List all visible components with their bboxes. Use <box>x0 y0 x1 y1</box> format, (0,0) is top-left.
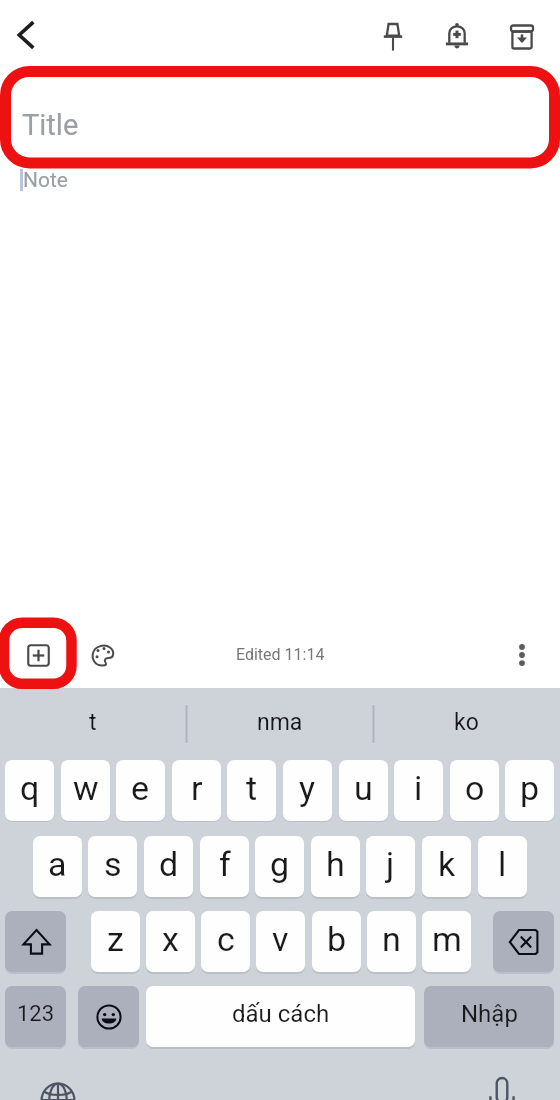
staticText: c <box>217 919 235 959</box>
staticText: s <box>104 844 122 884</box>
button[interactable]: m <box>422 911 471 972</box>
button[interactable]: l <box>478 836 527 897</box>
staticText: y <box>299 768 316 808</box>
button[interactable]: y <box>283 760 332 821</box>
button[interactable]: More options <box>498 631 546 679</box>
button[interactable]: s <box>88 836 137 897</box>
staticText: d <box>159 844 179 884</box>
staticText: w <box>73 768 99 808</box>
button[interactable]: c <box>201 911 250 972</box>
button[interactable]: f <box>200 836 249 897</box>
staticText: g <box>270 844 290 884</box>
button[interactable] <box>78 986 139 1047</box>
staticText: u <box>354 768 373 808</box>
button[interactable]: g <box>255 836 304 897</box>
button[interactable]: u <box>339 760 388 821</box>
button[interactable]: x <box>146 911 195 972</box>
button[interactable]: 123 <box>5 986 66 1047</box>
button[interactable]: p <box>505 760 554 821</box>
button[interactable]: v <box>256 911 305 972</box>
staticText: f <box>219 844 231 884</box>
staticText: r <box>191 768 203 808</box>
button[interactable]: j <box>366 836 415 897</box>
button[interactable]: b <box>312 911 361 972</box>
button[interactable]: t <box>227 760 276 821</box>
button[interactable]: a <box>33 836 82 897</box>
button[interactable]: Back <box>2 11 50 59</box>
button[interactable]: h <box>311 836 360 897</box>
button[interactable]: Archive <box>498 13 546 61</box>
staticText: n <box>382 919 401 959</box>
staticText: nma <box>257 709 303 736</box>
button[interactable] <box>5 911 66 972</box>
staticText: q <box>20 768 40 808</box>
staticText: dấu cách <box>232 1000 330 1028</box>
staticText: Title <box>22 108 79 142</box>
button[interactable]: n <box>367 911 416 972</box>
staticText: Note <box>23 168 68 193</box>
staticText: l <box>498 844 507 884</box>
button[interactable]: k <box>422 836 471 897</box>
staticText: a <box>48 844 67 884</box>
button[interactable]: Add <box>14 631 62 679</box>
button[interactable]: Pin <box>369 13 417 61</box>
staticText: i <box>414 768 423 808</box>
staticText: 123 <box>17 1001 55 1027</box>
staticText: b <box>327 919 347 959</box>
staticText: t <box>89 709 97 736</box>
button[interactable]: e <box>116 760 165 821</box>
staticText: Nhập <box>461 1000 518 1028</box>
button[interactable]: z <box>91 911 140 972</box>
button[interactable]: q <box>5 760 54 821</box>
staticText: h <box>326 844 345 884</box>
staticText: o <box>465 768 485 808</box>
button[interactable]: Voice input <box>485 1078 519 1100</box>
staticText: v <box>272 919 289 959</box>
staticText: t <box>246 768 258 808</box>
button[interactable]: dấu cách <box>146 986 415 1047</box>
button[interactable]: nma <box>186 688 373 757</box>
staticText: j <box>386 844 395 884</box>
staticText: Edited 11:14 <box>236 645 325 664</box>
staticText: x <box>162 919 179 959</box>
staticText: m <box>432 919 462 959</box>
staticText: k <box>438 844 456 884</box>
button[interactable]: i <box>394 760 443 821</box>
button[interactable]: ko <box>373 688 560 757</box>
button[interactable]: d <box>144 836 193 897</box>
staticText: e <box>131 768 150 808</box>
button[interactable]: Add reminder <box>433 13 481 61</box>
button[interactable]: Change colour <box>78 631 126 679</box>
button[interactable]: w <box>61 760 110 821</box>
button[interactable] <box>493 911 554 972</box>
button[interactable]: t <box>0 688 186 757</box>
staticText: z <box>107 919 124 959</box>
staticText: p <box>520 768 540 808</box>
button[interactable]: o <box>450 760 499 821</box>
button[interactable]: Nhập <box>424 986 554 1047</box>
staticText: ko <box>454 709 479 736</box>
button[interactable]: Change language <box>38 1080 78 1100</box>
button[interactable]: r <box>172 760 221 821</box>
